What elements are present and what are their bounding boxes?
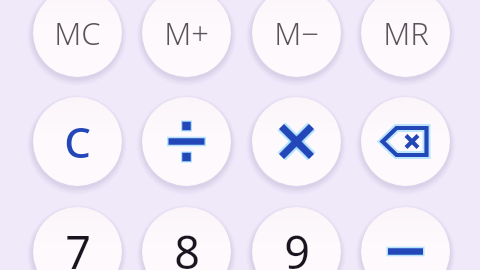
button[interactable]: M+ bbox=[142, 0, 231, 77]
staticText: 7 bbox=[65, 221, 91, 270]
staticText: 8 bbox=[174, 221, 200, 270]
button[interactable]: Multiply bbox=[252, 97, 341, 186]
button[interactable]: MC bbox=[33, 0, 122, 77]
staticText: MR bbox=[383, 12, 429, 54]
button[interactable]: Minus bbox=[361, 207, 450, 270]
button[interactable]: 9 bbox=[252, 207, 341, 270]
button[interactable]: 7 bbox=[33, 207, 122, 270]
button[interactable]: C bbox=[33, 97, 122, 186]
staticText: C bbox=[64, 113, 91, 170]
staticText: MC bbox=[54, 12, 101, 54]
button[interactable]: M− bbox=[252, 0, 341, 77]
staticText: M− bbox=[274, 12, 319, 54]
button[interactable]: 8 bbox=[142, 207, 231, 270]
button[interactable]: Backspace bbox=[361, 97, 450, 186]
staticText: 9 bbox=[284, 221, 310, 270]
button[interactable]: MR bbox=[361, 0, 450, 77]
staticText: M+ bbox=[164, 12, 209, 54]
button[interactable]: Divide bbox=[142, 97, 231, 186]
